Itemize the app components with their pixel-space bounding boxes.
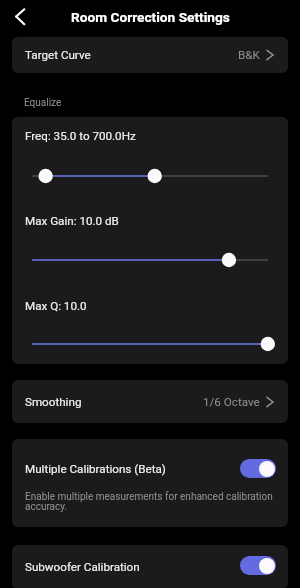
staticText: Max Gain: 10.0 dB bbox=[25, 214, 119, 228]
staticText: Equalize bbox=[24, 97, 62, 109]
staticText: Max Q: 10.0 bbox=[25, 299, 87, 313]
button[interactable]: Smoothing bbox=[12, 380, 288, 423]
staticText: Target Curve bbox=[25, 48, 91, 62]
button[interactable]: Toggle bbox=[240, 459, 276, 478]
staticText: Enable multiple measurements for enhance… bbox=[25, 491, 276, 513]
staticText: B&K bbox=[238, 48, 260, 62]
button[interactable]: Target Curve bbox=[12, 37, 288, 73]
button[interactable]: Toggle bbox=[240, 556, 276, 575]
staticText: Subwoofer Calibration bbox=[25, 560, 140, 574]
staticText: Multiple Calibrations (Beta) bbox=[25, 462, 166, 476]
button[interactable]: Back bbox=[4, 4, 30, 30]
staticText: Freq: 35.0 to 700.0Hz bbox=[25, 129, 136, 143]
staticText: Room Correction Settings bbox=[71, 9, 230, 25]
staticText: 1/6 Octave bbox=[203, 395, 260, 409]
staticText: Smoothing bbox=[25, 395, 82, 409]
button[interactable]: Subwoofer Calibration bbox=[12, 545, 288, 588]
